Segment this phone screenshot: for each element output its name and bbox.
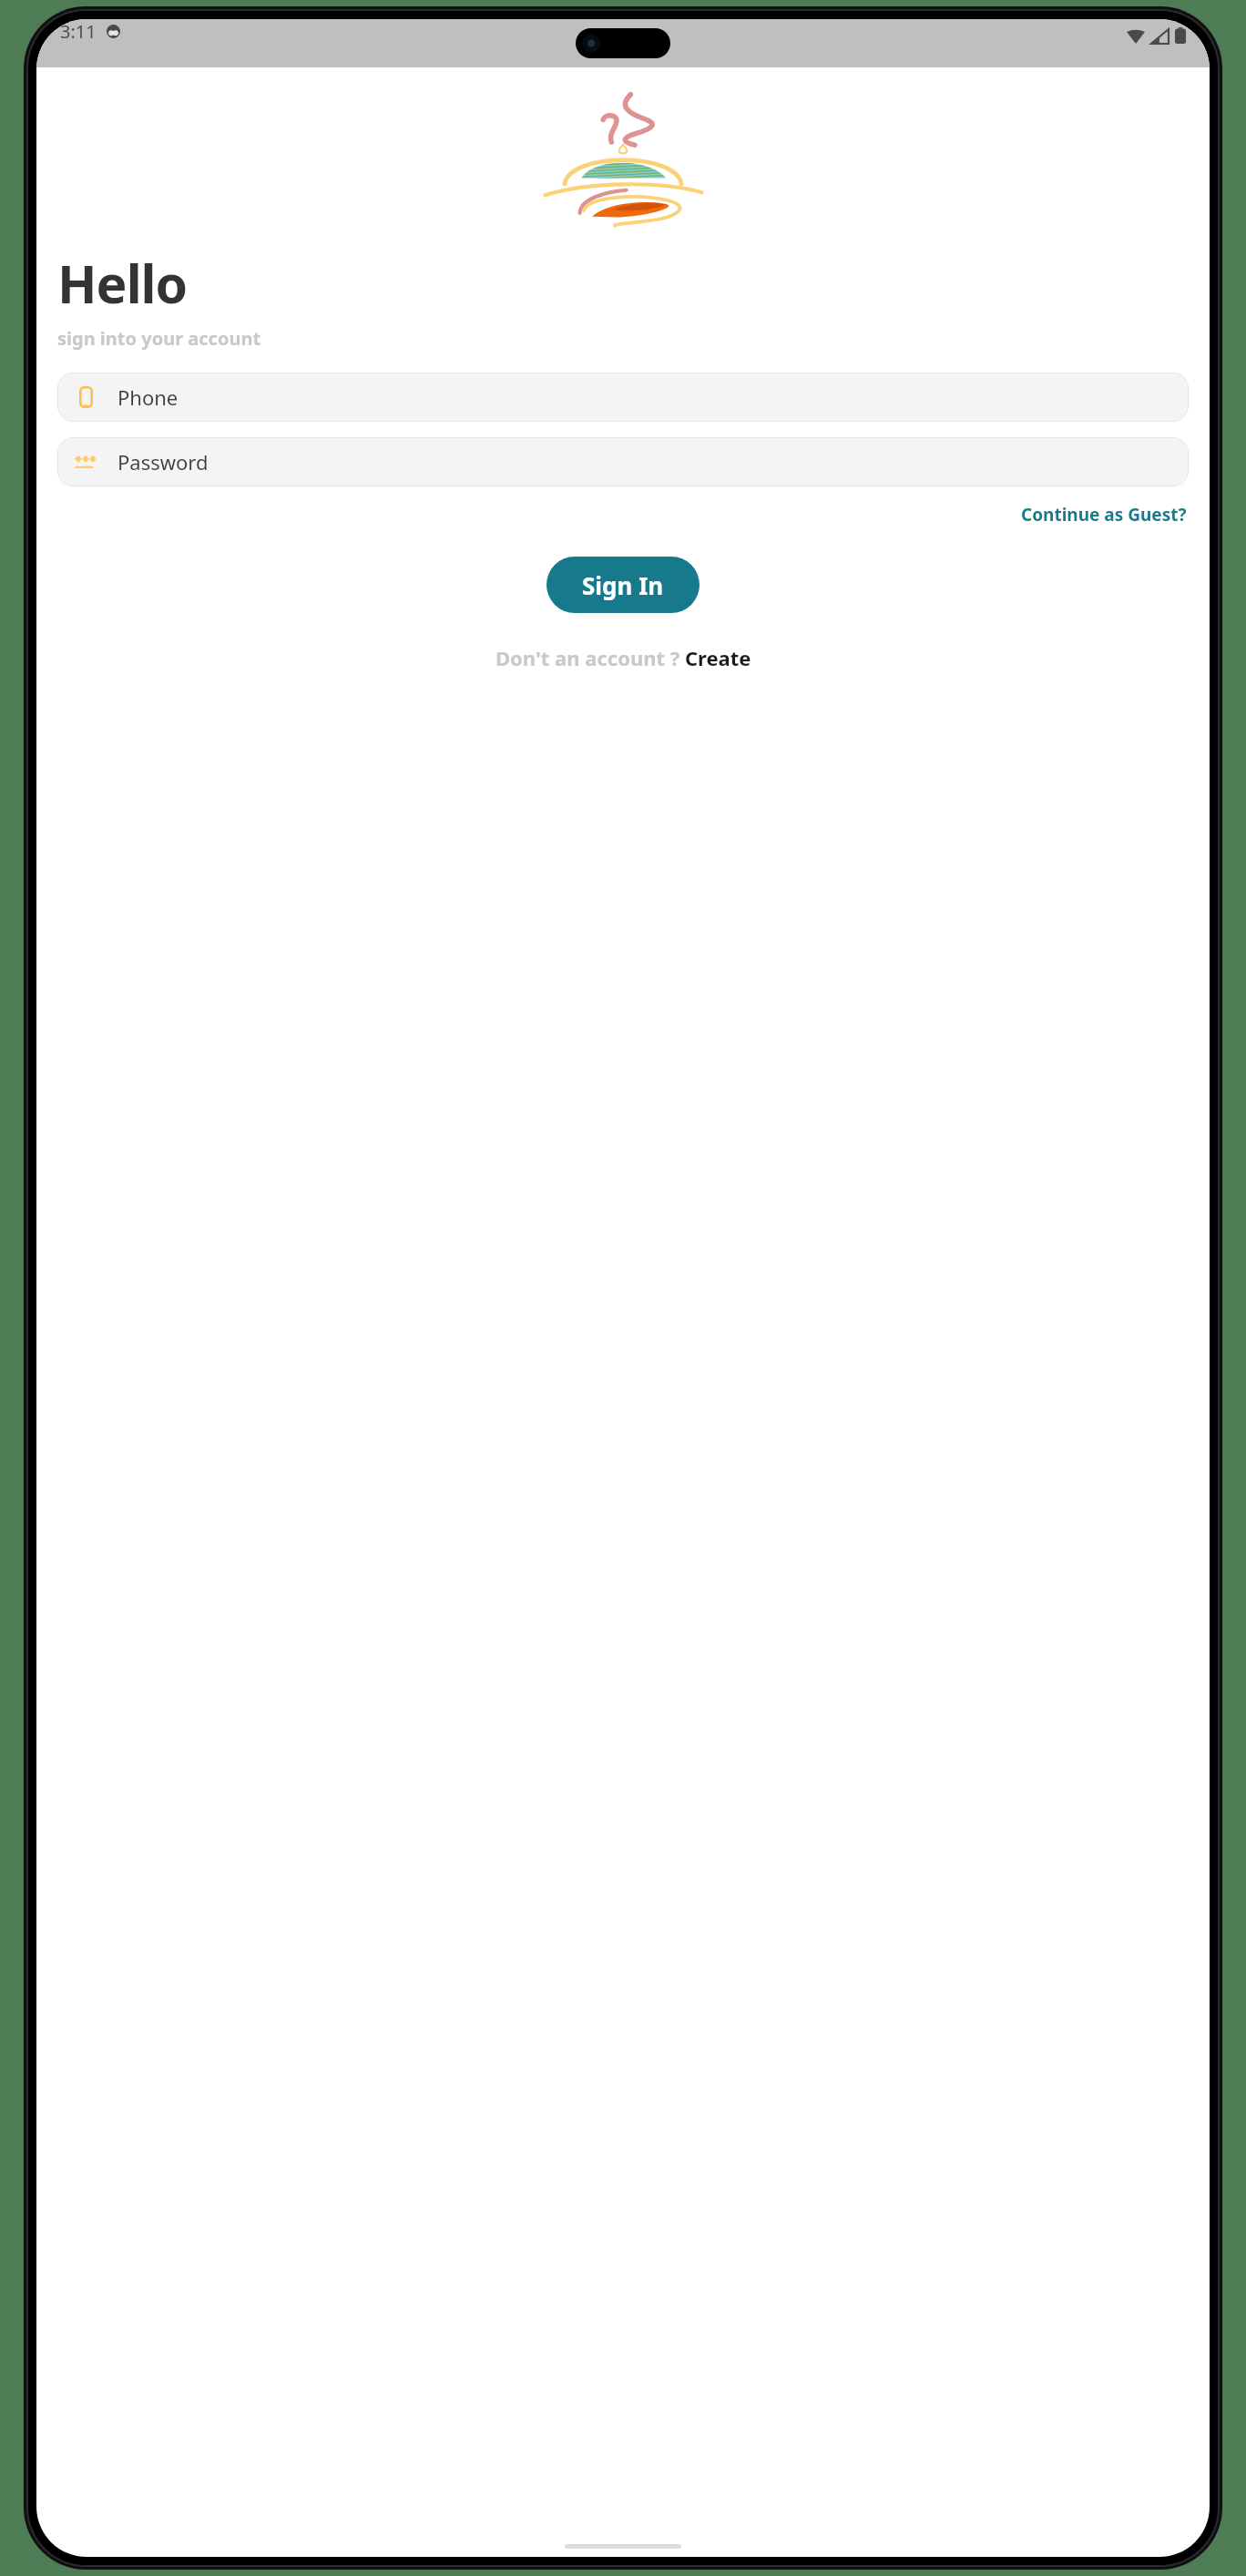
staticText: Phone — [117, 383, 179, 411]
button[interactable]: Password — [57, 437, 1189, 486]
staticText: Sign In — [582, 569, 664, 601]
staticText: Hello — [57, 248, 188, 319]
staticText: Password — [117, 448, 209, 475]
staticText: 3:11 — [60, 19, 97, 44]
staticText: Don't an account ? Create — [495, 644, 751, 671]
staticText: Continue as Guest? — [1021, 503, 1187, 526]
button[interactable]: Continue as Guest? — [1019, 500, 1189, 529]
button[interactable]: Don't an account ? Create — [490, 640, 757, 675]
button[interactable]: Sign In — [546, 557, 700, 613]
button[interactable]: Phone — [57, 373, 1189, 422]
staticText: sign into your account — [57, 326, 261, 351]
